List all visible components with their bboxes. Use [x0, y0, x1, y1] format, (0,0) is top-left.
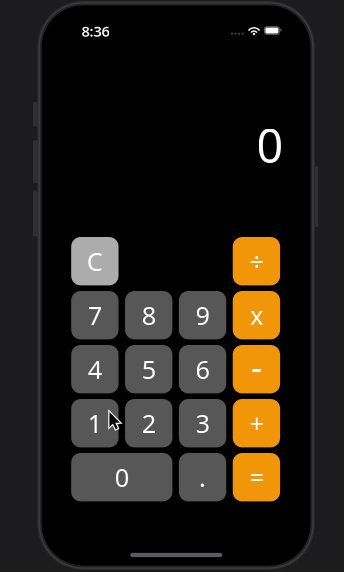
button[interactable]: 9	[179, 291, 226, 339]
staticText: 0	[115, 460, 129, 494]
button[interactable]: 8	[125, 291, 172, 339]
button[interactable]: Clear	[71, 237, 119, 285]
staticText: 3	[196, 406, 210, 440]
button[interactable]: 2	[125, 399, 172, 447]
button[interactable]: Equals	[233, 453, 280, 501]
staticText: =	[249, 460, 263, 494]
button[interactable]: 0	[71, 453, 172, 501]
button[interactable]: 3	[179, 399, 226, 447]
button[interactable]: Plus	[233, 399, 280, 447]
button[interactable]: 1	[71, 399, 119, 447]
button[interactable]: 6	[179, 345, 226, 393]
staticText: 0	[256, 114, 283, 176]
staticText: ÷	[249, 244, 263, 278]
staticText: 7	[88, 298, 102, 332]
staticText: 4	[88, 352, 102, 386]
staticText: +	[249, 406, 263, 440]
staticText: 6	[196, 352, 210, 386]
button[interactable]: Decimal point	[179, 453, 226, 501]
button[interactable]: Multiply	[233, 291, 280, 339]
staticText: 8:36	[81, 21, 109, 41]
staticText: 8	[142, 298, 156, 332]
button[interactable]: 7	[71, 291, 119, 339]
staticText: x	[250, 298, 263, 332]
button[interactable]: 5	[125, 345, 172, 393]
button[interactable]: Minus	[233, 345, 280, 393]
staticText: .	[199, 460, 206, 494]
staticText: 1	[88, 406, 102, 440]
staticText: 5	[142, 352, 156, 386]
staticText: 9	[196, 298, 210, 332]
staticText: 2	[142, 406, 156, 440]
button[interactable]: 4	[71, 345, 119, 393]
button[interactable]: Divide	[233, 237, 280, 285]
staticText: C	[87, 244, 103, 278]
